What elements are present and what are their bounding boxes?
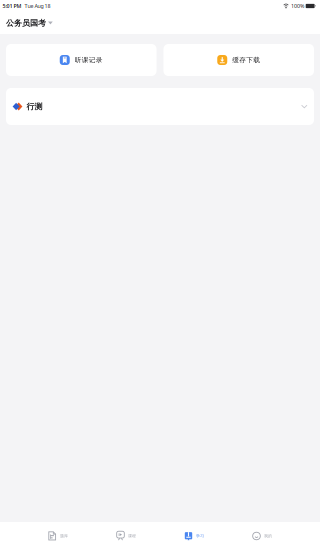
button[interactable]: 学习 <box>160 522 228 550</box>
staticText: Tue Aug 18 <box>22 2 51 10</box>
staticText: 我的 <box>264 533 272 538</box>
button[interactable]: 行测 <box>6 88 314 125</box>
button[interactable]: 听课记录 <box>6 44 156 76</box>
staticText: 公务员国考 <box>6 18 46 28</box>
button[interactable]: 课程 <box>92 522 160 550</box>
staticText: 缓存下载 <box>232 56 260 64</box>
staticText: 题库 <box>60 533 68 538</box>
staticText: 课程 <box>128 533 136 538</box>
button[interactable]: 缓存下载 <box>163 44 314 76</box>
button[interactable]: 公务员国考 <box>0 12 320 34</box>
button[interactable]: 我的 <box>228 522 296 550</box>
button[interactable]: 题库 <box>24 522 92 550</box>
staticText: 学习 <box>196 533 204 538</box>
staticText: 听课记录 <box>75 56 103 64</box>
staticText: 100% <box>291 2 304 10</box>
staticText: 行测 <box>26 102 42 111</box>
staticText: 5:01 PM <box>3 2 22 10</box>
